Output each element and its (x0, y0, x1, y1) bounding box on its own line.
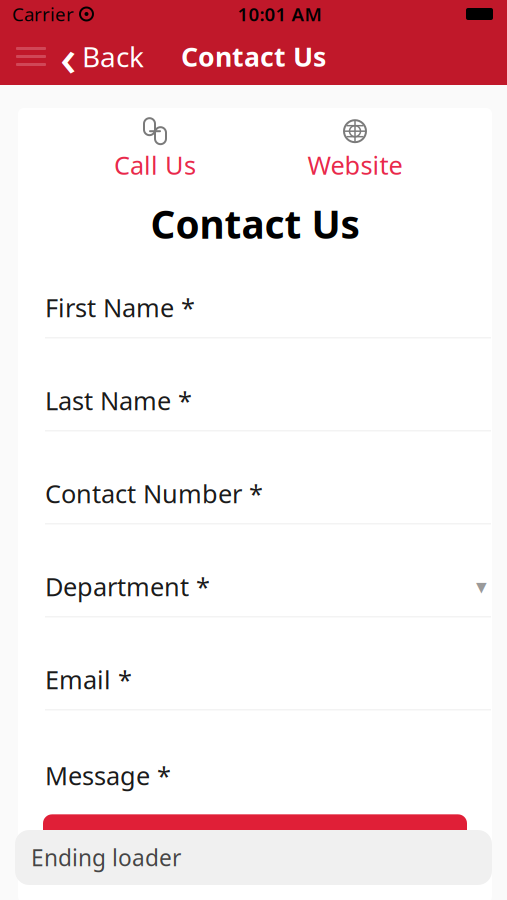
staticText: Message * (45, 758, 171, 792)
button[interactable]: Last Name * (19, 370, 491, 463)
staticText: Ending loader (31, 842, 181, 872)
button[interactable]: Email * (19, 649, 491, 742)
staticText: 10:01 AM (237, 2, 321, 26)
staticText: Last Name * (45, 383, 192, 417)
staticText: Contact Us (150, 198, 359, 249)
staticText: First Name * (45, 290, 195, 324)
button[interactable]: Submit (43, 814, 467, 862)
staticText: Call Us (114, 148, 196, 182)
staticText: Carrier (12, 2, 74, 26)
button[interactable]: First Name * (19, 277, 491, 370)
button[interactable]: Call Us (55, 119, 255, 181)
staticText: Department * (45, 569, 210, 603)
button[interactable]: ‹ (56, 34, 148, 78)
staticText: Contact Us (181, 39, 326, 74)
staticText: Contact Number * (45, 476, 263, 510)
button[interactable]: Menu (8, 34, 54, 78)
staticText: Website (307, 148, 402, 182)
button[interactable]: Website (255, 119, 455, 181)
staticText: Back (82, 38, 144, 75)
staticText: Email * (45, 662, 132, 696)
button[interactable]: Contact Number * (19, 463, 491, 556)
button[interactable]: Department * (19, 556, 491, 649)
staticText: ▾ (476, 574, 487, 598)
staticText: ‹ (60, 23, 77, 90)
